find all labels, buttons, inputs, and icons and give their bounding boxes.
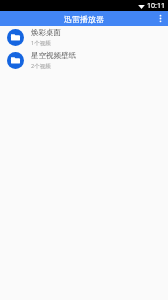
button[interactable]: 星空视频壁纸 xyxy=(0,49,168,72)
staticText: 迅雷播放器 xyxy=(64,14,104,24)
staticText: 焕彩桌面 xyxy=(31,28,61,37)
staticText: 10:11 xyxy=(147,1,165,11)
staticText: 1个视频 xyxy=(31,39,51,47)
button[interactable]: More options xyxy=(153,11,168,26)
staticText: 星空视频壁纸 xyxy=(31,51,76,60)
button[interactable]: 焕彩桌面 xyxy=(0,26,168,49)
staticText: 2个视频 xyxy=(31,62,51,70)
